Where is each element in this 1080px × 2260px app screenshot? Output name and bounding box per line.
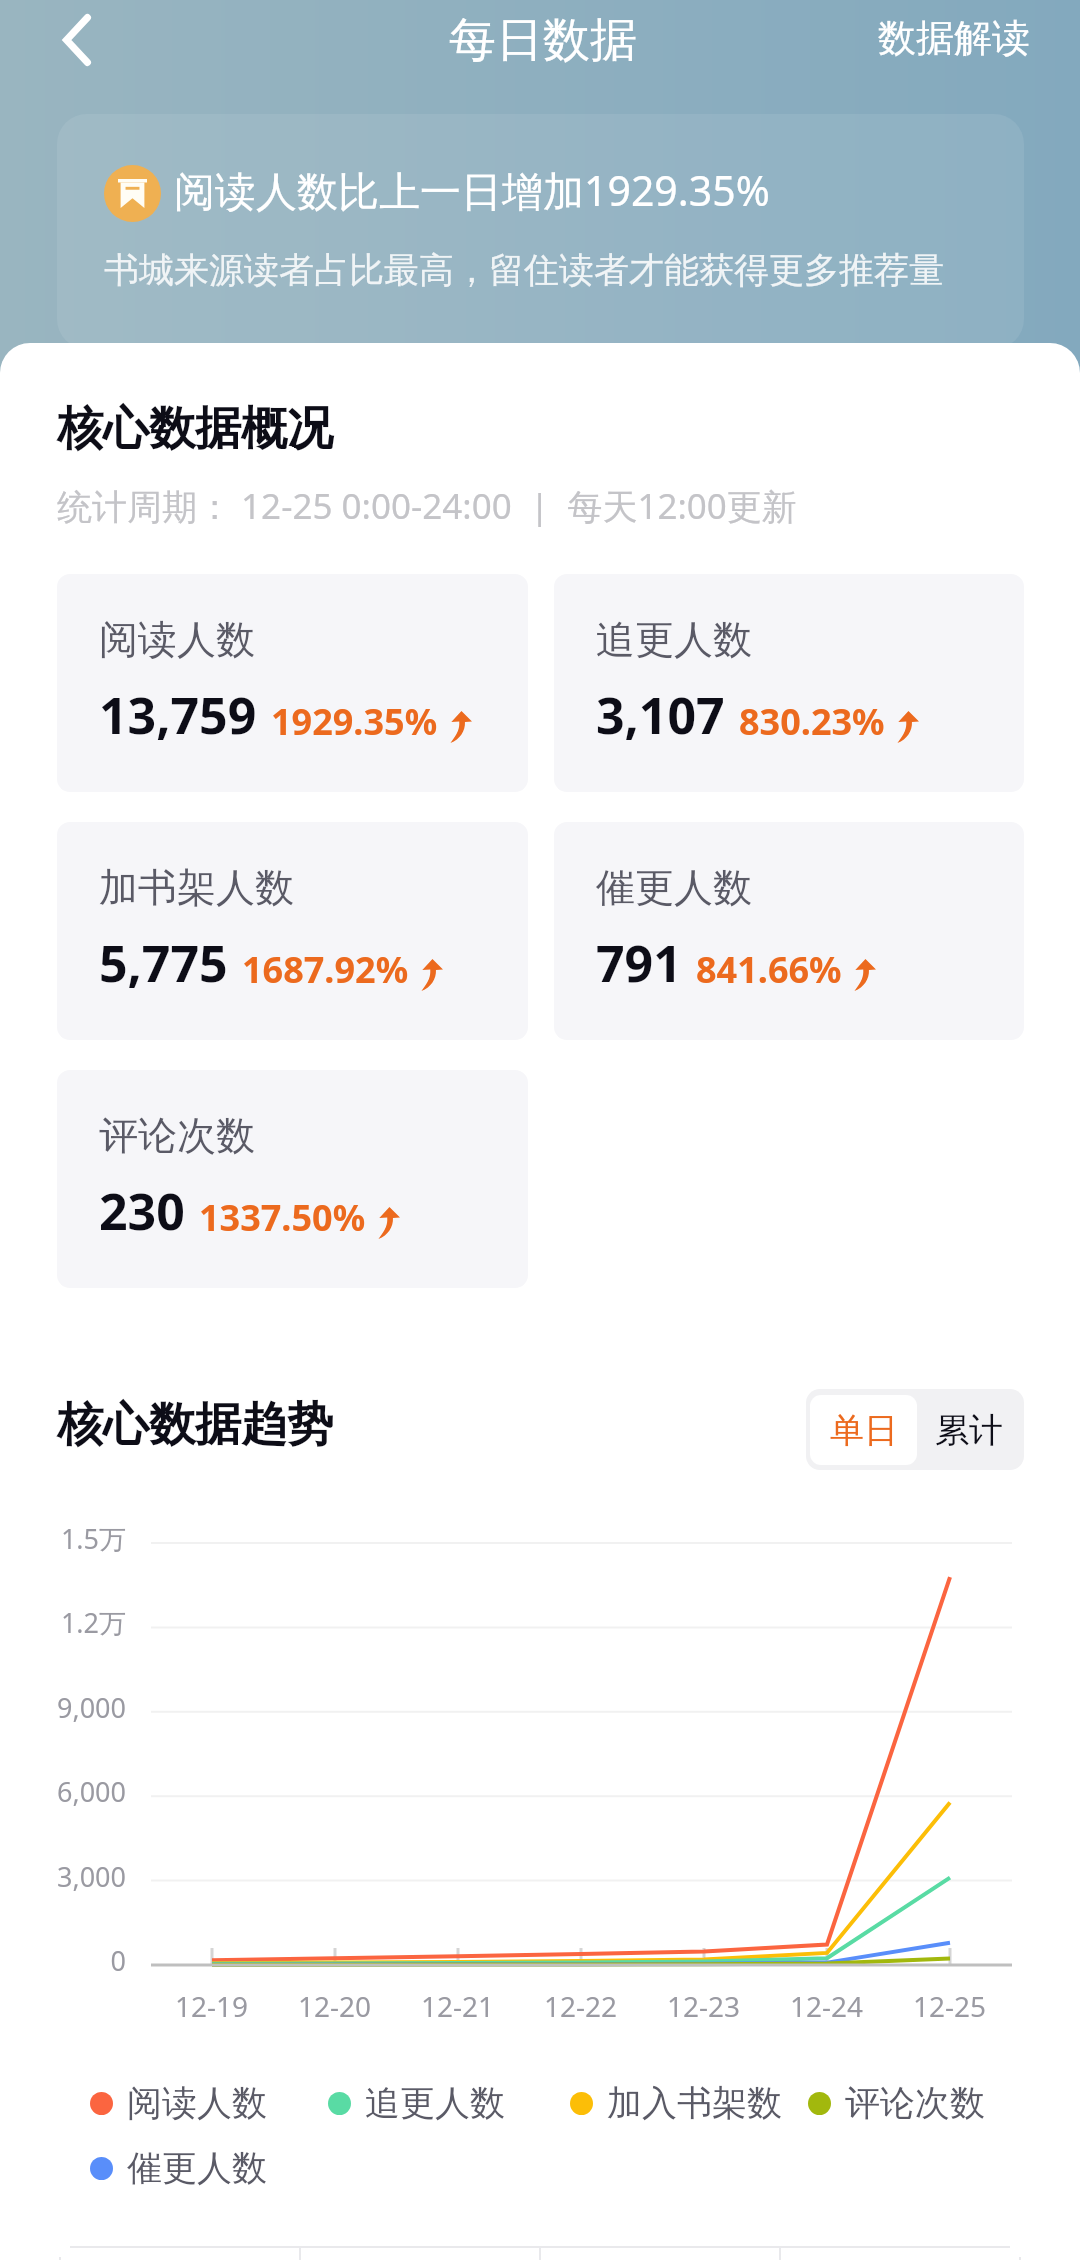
staticText: 追更人数 xyxy=(365,2081,505,2125)
staticText: 评论次数 xyxy=(845,2081,985,2125)
button[interactable]: 阅读人数比上一日增加1929.35% xyxy=(57,114,1024,349)
staticText: 5,775 xyxy=(99,929,228,997)
button[interactable]: Back xyxy=(17,0,137,83)
staticText: 统计周期： 12-25 0:00-24:00 | 每天12:00更新 xyxy=(57,482,797,530)
button[interactable]: 阅读人数 xyxy=(57,574,528,792)
staticText: 13,759 xyxy=(99,681,257,749)
staticText: 催更人数 xyxy=(127,2146,267,2190)
staticText: 12-21 xyxy=(421,1987,495,2025)
staticText: 3,107 xyxy=(596,681,725,749)
staticText: 841.66% xyxy=(696,945,842,994)
staticText: 阅读人数 xyxy=(99,615,255,664)
staticText: 催更人数 xyxy=(596,863,752,912)
staticText: 12-24 xyxy=(790,1987,864,2025)
staticText: 3,000 xyxy=(56,1858,126,1895)
staticText: 6,000 xyxy=(56,1773,126,1810)
staticText: 追更人数 xyxy=(596,615,752,664)
button[interactable]: 催更人数 xyxy=(554,822,1024,1040)
button[interactable]: 单日 xyxy=(810,1395,917,1465)
staticText: 1.5万 xyxy=(60,1520,126,1557)
staticText: 12-25 xyxy=(913,1987,987,2025)
staticText: 阅读人数比上一日增加1929.35% xyxy=(174,162,770,218)
staticText: 12-22 xyxy=(544,1987,618,2025)
staticText: 核心数据概况 xyxy=(57,400,333,458)
staticText: 1337.50% xyxy=(199,1193,366,1242)
staticText: 单日 xyxy=(830,1409,898,1452)
staticText: 书城来源读者占比最高，留住读者才能获得更多推荐量 xyxy=(104,248,944,292)
staticText: 加入书架数 xyxy=(607,2081,782,2125)
staticText: 数据解读 xyxy=(878,14,1030,62)
staticText: 12-20 xyxy=(298,1987,372,2025)
staticText: 1.2万 xyxy=(60,1604,126,1641)
staticText: 核心数据趋势 xyxy=(57,1396,333,1454)
staticText: 评论次数 xyxy=(99,1111,255,1160)
button[interactable]: 评论次数 xyxy=(57,1070,528,1288)
button[interactable]: 数据解读 xyxy=(880,0,1080,86)
staticText: 1929.35% xyxy=(271,697,438,746)
staticText: 累计 xyxy=(935,1409,1003,1452)
button[interactable]: 追更人数 xyxy=(554,574,1024,792)
staticText: 每日数据 xyxy=(449,11,637,70)
staticText: 830.23% xyxy=(739,697,885,746)
button[interactable]: 累计 xyxy=(917,1395,1020,1465)
staticText: 791 xyxy=(596,929,682,997)
staticText: 1687.92% xyxy=(242,945,409,994)
staticText: 230 xyxy=(99,1177,185,1245)
staticText: 加书架人数 xyxy=(99,863,294,912)
staticText: 0 xyxy=(110,1942,126,1979)
staticText: 9,000 xyxy=(56,1689,126,1726)
staticText: 12-19 xyxy=(175,1987,249,2025)
staticText: 12-23 xyxy=(667,1987,741,2025)
button[interactable]: 加书架人数 xyxy=(57,822,528,1040)
staticText: 阅读人数 xyxy=(127,2081,267,2125)
